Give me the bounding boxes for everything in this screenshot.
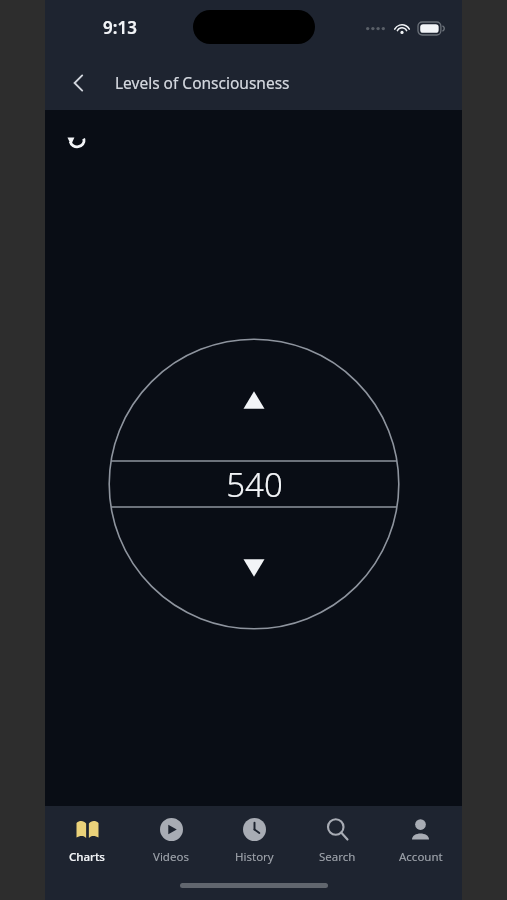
- staticText: History: [235, 849, 274, 865]
- staticText: Charts: [69, 849, 105, 865]
- button[interactable]: Value picker 540: [108, 338, 400, 630]
- staticText: Account: [399, 849, 443, 865]
- button[interactable]: Back: [57, 61, 101, 105]
- staticText: 9:13: [103, 16, 137, 39]
- button[interactable]: Videos: [129, 806, 213, 875]
- staticText: Levels of Consciousness: [115, 72, 290, 93]
- staticText: Search: [319, 849, 356, 865]
- button[interactable]: Charts: [45, 806, 129, 875]
- button[interactable]: Account: [379, 806, 462, 875]
- staticText: Videos: [153, 849, 189, 865]
- button[interactable]: Search: [296, 806, 379, 875]
- button[interactable]: Undo: [54, 118, 98, 162]
- staticText: 540: [226, 462, 283, 507]
- button[interactable]: History: [213, 806, 296, 875]
